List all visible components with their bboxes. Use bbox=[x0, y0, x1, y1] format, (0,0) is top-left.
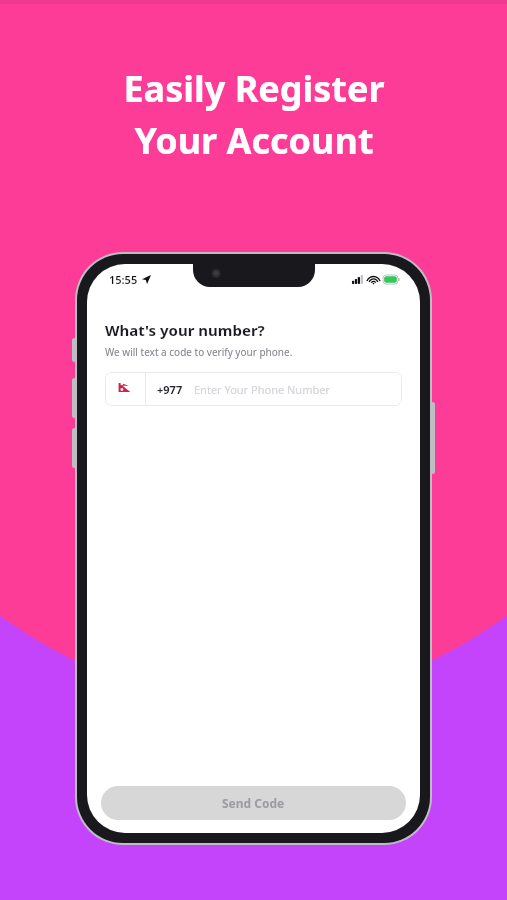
staticText: Send Code bbox=[222, 795, 285, 811]
staticText: Your Account bbox=[134, 116, 374, 165]
button[interactable]: Select country code, Nepal bbox=[105, 372, 402, 406]
staticText: +977 bbox=[157, 382, 183, 397]
staticText: What's your number? bbox=[105, 320, 265, 340]
staticText: Easily Register bbox=[123, 64, 385, 113]
staticText: We will text a code to verify your phone… bbox=[105, 345, 293, 359]
button[interactable]: Send Code bbox=[101, 786, 406, 820]
other: Select country code, Nepal bbox=[105, 372, 145, 406]
staticText: 15:55 bbox=[109, 272, 138, 287]
staticText: Enter Your Phone Number bbox=[194, 382, 330, 397]
